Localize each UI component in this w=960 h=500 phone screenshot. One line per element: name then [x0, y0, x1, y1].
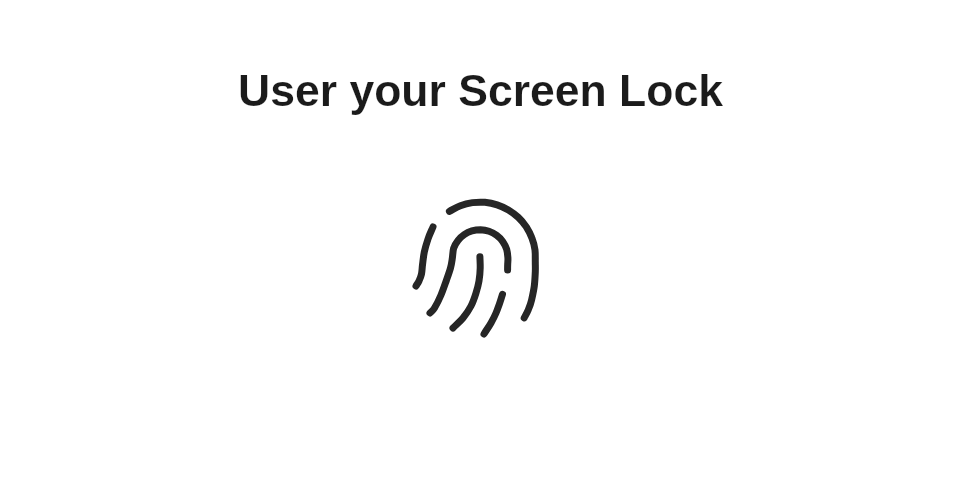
staticText: User your Screen Lock [238, 66, 723, 116]
button[interactable]: Scan your fingerprint [408, 192, 548, 342]
